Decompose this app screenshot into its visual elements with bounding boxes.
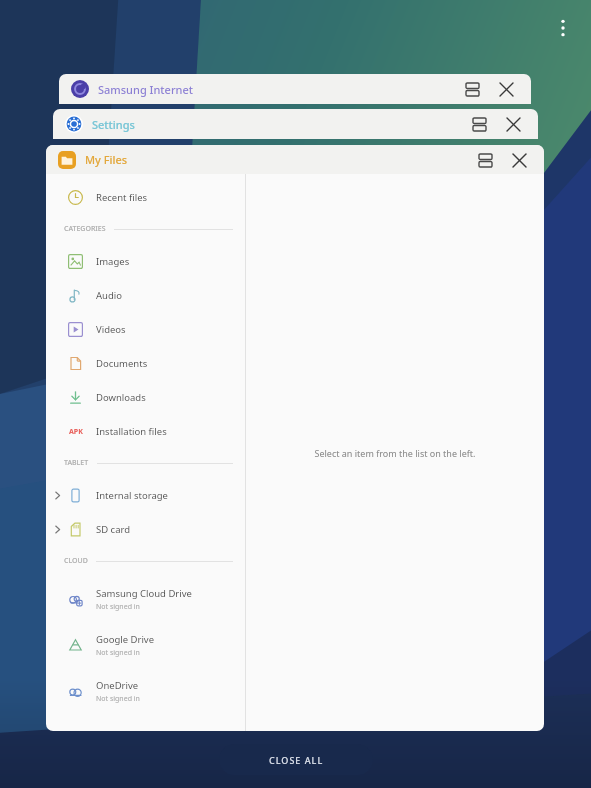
staticText: Downloads bbox=[96, 391, 146, 404]
staticText: TABLET bbox=[64, 458, 89, 468]
button[interactable]: Documents bbox=[46, 346, 245, 380]
button[interactable]: More options bbox=[545, 10, 581, 46]
staticText: Samsung Internet bbox=[98, 82, 193, 97]
button[interactable]: Split screen bbox=[459, 76, 485, 102]
staticText: Not signed in bbox=[96, 648, 140, 658]
staticText: OneDrive bbox=[96, 679, 139, 692]
button[interactable]: OneDrive bbox=[46, 668, 245, 714]
button[interactable]: CLOSE ALL bbox=[219, 744, 373, 775]
staticText: Audio bbox=[96, 289, 122, 302]
button[interactable]: Close bbox=[506, 147, 532, 173]
staticText: Internal storage bbox=[96, 489, 168, 502]
staticText: Google Drive bbox=[96, 633, 155, 646]
button[interactable]: Close bbox=[500, 111, 526, 137]
staticText: Documents bbox=[96, 357, 148, 370]
button[interactable]: Split screen bbox=[466, 111, 492, 137]
staticText: Not signed in bbox=[96, 602, 140, 612]
staticText: Samsung Cloud Drive bbox=[96, 587, 192, 600]
button[interactable]: Recent files bbox=[46, 180, 245, 214]
staticText: APK bbox=[69, 427, 83, 437]
staticText: Installation files bbox=[96, 425, 167, 438]
button[interactable]: Split screen bbox=[472, 147, 498, 173]
button[interactable]: My Files bbox=[46, 145, 544, 174]
button[interactable]: SD card bbox=[46, 512, 245, 546]
button[interactable]: Downloads bbox=[46, 380, 245, 414]
button[interactable]: Images bbox=[46, 244, 245, 278]
button[interactable]: Google Drive bbox=[46, 622, 245, 668]
button[interactable]: Samsung Cloud Drive bbox=[46, 576, 245, 622]
button[interactable]: Close bbox=[493, 76, 519, 102]
button[interactable]: Internal storage bbox=[46, 478, 245, 512]
staticText: Videos bbox=[96, 323, 126, 336]
staticText: CLOUD bbox=[64, 556, 88, 566]
button[interactable]: Audio bbox=[46, 278, 245, 312]
button[interactable]: APK bbox=[46, 414, 245, 448]
staticText: Not signed in bbox=[96, 694, 140, 704]
staticText: SD card bbox=[96, 523, 131, 536]
button[interactable]: Videos bbox=[46, 312, 245, 346]
button[interactable]: Settings bbox=[53, 109, 538, 139]
staticText: Recent files bbox=[96, 191, 148, 204]
staticText: Settings bbox=[92, 117, 135, 132]
staticText: Select an item from the list on the left… bbox=[314, 447, 476, 459]
staticText: My Files bbox=[85, 152, 128, 167]
button[interactable]: Samsung Internet bbox=[59, 74, 531, 104]
staticText: CLOSE ALL bbox=[269, 754, 324, 766]
staticText: CATEGORIES bbox=[64, 224, 106, 234]
staticText: Images bbox=[96, 255, 130, 268]
